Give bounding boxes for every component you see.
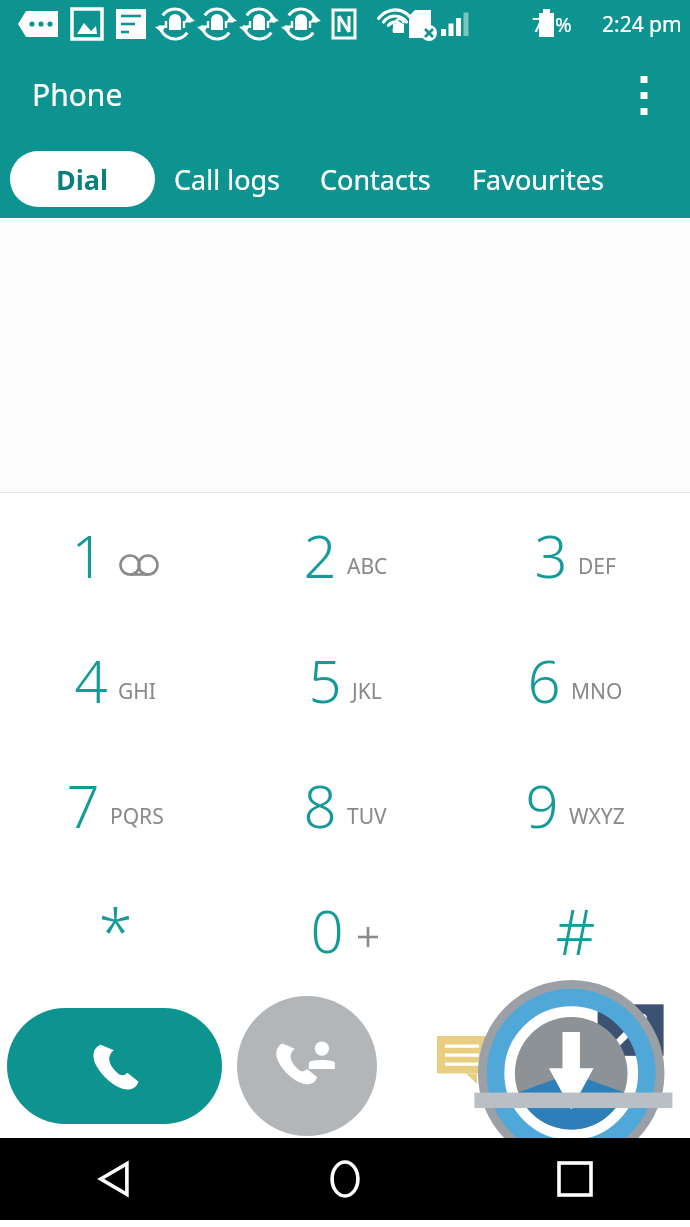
button[interactable]: Contacts xyxy=(300,151,450,207)
button[interactable]: 0 xyxy=(230,868,460,993)
button[interactable]: Home xyxy=(310,1144,380,1214)
button[interactable]: Dial xyxy=(10,151,155,207)
staticText: DEF xyxy=(578,552,616,581)
staticText: 4 xyxy=(74,641,108,720)
button[interactable]: Add to contacts xyxy=(237,996,377,1136)
staticText: ABC xyxy=(347,552,388,581)
button[interactable]: 3 xyxy=(460,493,690,618)
button[interactable]: # xyxy=(460,868,690,993)
staticText: GHI xyxy=(118,677,156,706)
staticText: Favourites xyxy=(472,161,604,198)
button[interactable]: Favourites xyxy=(450,151,625,207)
button[interactable]: 8 xyxy=(230,743,460,868)
staticText: * xyxy=(98,889,133,973)
staticText: # xyxy=(555,889,596,973)
button[interactable]: Back xyxy=(80,1144,150,1214)
button[interactable]: Call xyxy=(7,1008,222,1124)
button[interactable]: 7 xyxy=(0,743,230,868)
button[interactable]: 9 xyxy=(460,743,690,868)
button[interactable]: Message xyxy=(437,1036,487,1084)
staticText: MNO xyxy=(571,677,623,706)
staticText: 1 xyxy=(71,516,105,595)
staticText: 3 xyxy=(534,516,568,595)
button[interactable]: More options xyxy=(620,70,668,118)
staticText: Phone xyxy=(32,74,123,115)
staticText: 8 xyxy=(303,766,337,845)
staticText: PQRS xyxy=(110,802,164,831)
staticText: 7 xyxy=(66,766,100,845)
staticText: Dial xyxy=(56,161,109,198)
staticText: 6 xyxy=(527,641,561,720)
staticText: Contacts xyxy=(320,161,431,198)
staticText: 9 xyxy=(525,766,559,845)
button[interactable]: 5 xyxy=(230,618,460,743)
button[interactable]: Recent apps xyxy=(540,1144,610,1214)
staticText: 2:24 pm xyxy=(602,10,682,39)
staticText: 5 xyxy=(308,641,342,720)
staticText: 78% xyxy=(532,11,572,38)
button[interactable]: 1 xyxy=(0,493,230,618)
button[interactable]: 6 xyxy=(460,618,690,743)
button[interactable]: 2 xyxy=(230,493,460,618)
staticText: WXYZ xyxy=(569,802,625,831)
staticText: 2 xyxy=(303,516,337,595)
staticText: Call logs xyxy=(174,161,281,198)
staticText: 0 xyxy=(310,891,344,970)
button[interactable]: Call logs xyxy=(155,151,300,207)
button[interactable]: * xyxy=(0,868,230,993)
staticText: JKL xyxy=(352,677,382,706)
button[interactable]: 4 xyxy=(0,618,230,743)
staticText: TUV xyxy=(347,802,387,831)
